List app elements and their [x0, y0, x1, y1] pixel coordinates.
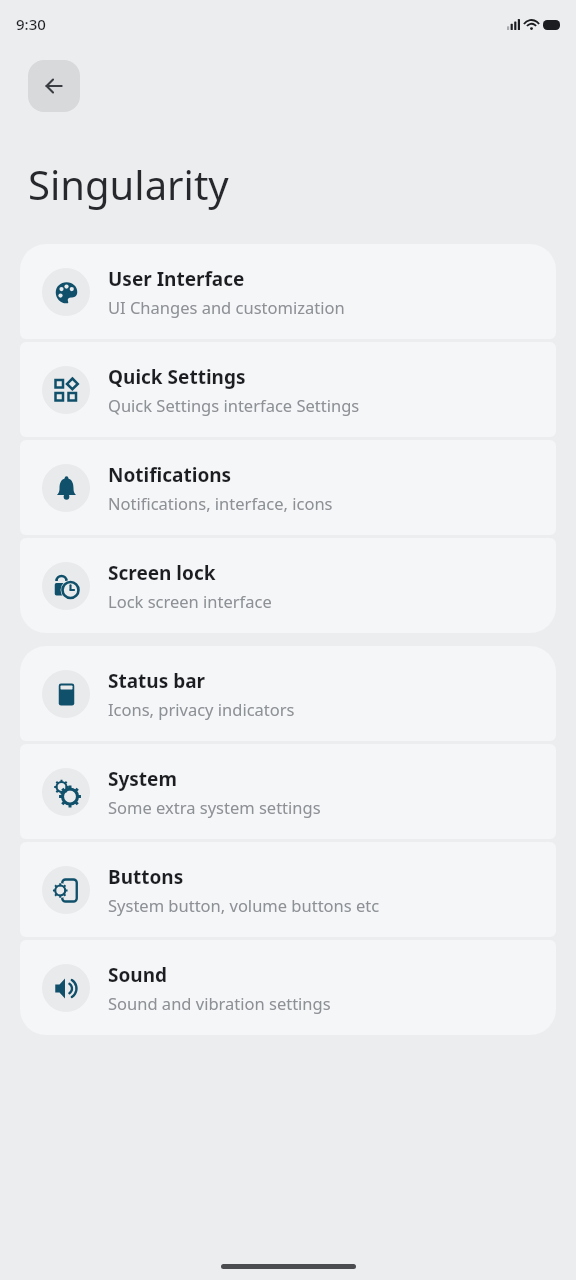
- staticText: Icons, privacy indicators: [108, 698, 295, 720]
- button[interactable]: Quick Settings: [20, 342, 556, 437]
- button[interactable]: User Interface: [20, 244, 556, 339]
- staticText: Notifications: [108, 462, 232, 488]
- staticText: Quick Settings interface Settings: [108, 394, 360, 416]
- button[interactable]: Screen lock: [20, 538, 556, 633]
- staticText: User Interface: [108, 266, 245, 292]
- button[interactable]: Sound: [20, 940, 556, 1035]
- staticText: Status bar: [108, 668, 206, 694]
- staticText: UI Changes and customization: [108, 296, 345, 318]
- staticText: Singularity: [28, 157, 229, 211]
- staticText: Sound: [108, 962, 168, 988]
- button[interactable]: Notifications: [20, 440, 556, 535]
- button[interactable]: Buttons: [20, 842, 556, 937]
- staticText: Notifications, interface, icons: [108, 492, 333, 514]
- staticText: Quick Settings: [108, 364, 246, 390]
- staticText: Buttons: [108, 864, 184, 890]
- staticText: Screen lock: [108, 560, 216, 586]
- staticText: Lock screen interface: [108, 590, 272, 612]
- staticText: System button, volume buttons etc: [108, 894, 380, 916]
- button[interactable]: System: [20, 744, 556, 839]
- button[interactable]: Back: [28, 60, 80, 112]
- button[interactable]: Status bar: [20, 646, 556, 741]
- staticText: Some extra system settings: [108, 796, 321, 818]
- staticText: System: [108, 766, 177, 792]
- staticText: Sound and vibration settings: [108, 992, 331, 1014]
- staticText: 9:30: [16, 14, 46, 34]
